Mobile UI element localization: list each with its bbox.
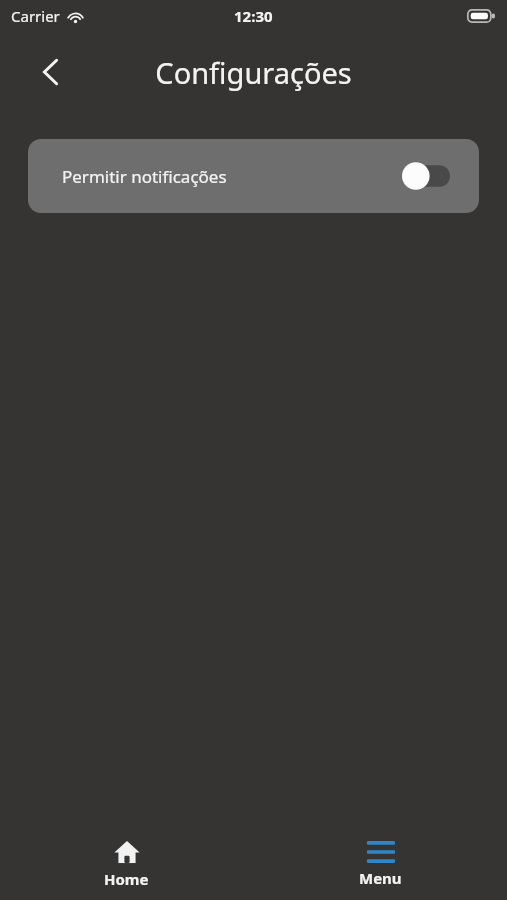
button[interactable]: Home	[80, 834, 173, 895]
staticText: Home	[104, 869, 149, 889]
staticText: Configurações	[80, 53, 427, 92]
button[interactable]: Menu	[335, 835, 426, 894]
staticText: Menu	[359, 868, 402, 888]
button[interactable]: Permitir notificacoes toggle	[402, 161, 450, 191]
button[interactable]: Permitir notificações	[28, 139, 479, 213]
staticText: 12:30	[234, 6, 273, 26]
staticText: Carrier	[11, 6, 60, 26]
button[interactable]: Back	[27, 48, 75, 96]
staticText: Permitir notificações	[62, 165, 227, 188]
